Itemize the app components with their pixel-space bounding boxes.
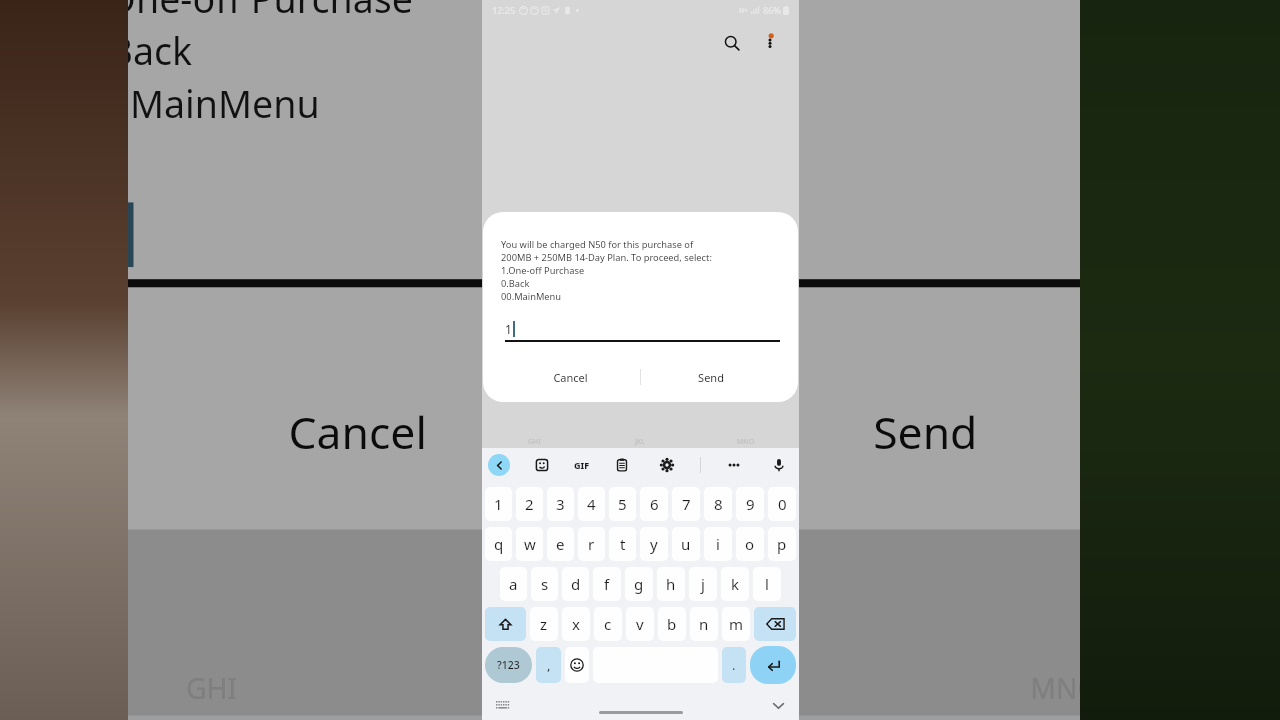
button[interactable]: MNO (853, 671, 1280, 711)
button[interactable]: a (500, 567, 527, 601)
staticText: 5 (618, 494, 627, 514)
button[interactable]: j (689, 567, 717, 601)
staticText: 0.Back (501, 277, 530, 290)
button[interactable]: Shift (485, 607, 526, 641)
button[interactable]: q (485, 527, 512, 561)
button[interactable]: k (721, 567, 749, 601)
button[interactable]: 1 (485, 487, 512, 521)
button[interactable]: i (704, 527, 732, 561)
button[interactable]: c (594, 607, 622, 641)
button[interactable]: 4 (578, 487, 605, 521)
button[interactable]: o (736, 527, 764, 561)
button[interactable]: 6 (640, 487, 668, 521)
button[interactable]: Enter (750, 646, 796, 684)
staticText: y (650, 534, 658, 554)
staticText: c (604, 614, 612, 634)
button[interactable]: h (657, 567, 685, 601)
staticText: You will be charged N50 for this purchas… (501, 238, 694, 251)
staticText: v (636, 614, 644, 634)
button[interactable]: Settings (655, 453, 679, 477)
button[interactable]: Send (641, 358, 780, 396)
staticText: 00.MainMenu (501, 290, 562, 303)
button[interactable]: Search (715, 26, 749, 60)
button[interactable]: More options (753, 26, 787, 60)
button[interactable]: Cancel (501, 358, 640, 396)
button[interactable]: Cancel (77, 352, 638, 505)
button[interactable]: d (562, 567, 589, 601)
button[interactable]: Voice input (767, 453, 791, 477)
button[interactable]: t (609, 527, 636, 561)
button[interactable]: b (658, 607, 686, 641)
staticText: H+ (739, 6, 748, 15)
button[interactable]: u (672, 527, 700, 561)
staticText: a (509, 574, 518, 594)
button[interactable]: MNO (693, 437, 799, 447)
button[interactable]: , (536, 647, 561, 683)
staticText: 4 (587, 494, 596, 514)
staticText: JKL (635, 437, 645, 447)
button[interactable]: l (753, 567, 781, 601)
button[interactable]: More (722, 453, 746, 477)
staticText: m (729, 614, 744, 634)
button[interactable]: y (640, 527, 668, 561)
button[interactable]: ?123 (485, 647, 532, 683)
button[interactable]: n (690, 607, 718, 641)
staticText: g (634, 574, 644, 594)
button[interactable]: Back (488, 454, 510, 476)
button[interactable]: Hide keyboard (767, 694, 789, 716)
staticText: 3 (556, 494, 565, 514)
button[interactable]: 9 (736, 487, 764, 521)
button[interactable]: r (578, 527, 605, 561)
button[interactable]: . (722, 647, 746, 683)
button[interactable]: v (626, 607, 654, 641)
button[interactable]: x (562, 607, 590, 641)
staticText: 0.Back (77, 25, 194, 77)
button[interactable]: p (768, 527, 796, 561)
button[interactable]: m (722, 607, 750, 641)
button[interactable]: e (547, 527, 574, 561)
button[interactable]: w (516, 527, 543, 561)
button[interactable]: s (531, 567, 558, 601)
staticText: k (731, 574, 740, 594)
button[interactable]: 0 (768, 487, 796, 521)
button[interactable]: 3 (547, 487, 574, 521)
staticText: 6 (650, 494, 659, 514)
button[interactable]: 8 (704, 487, 732, 521)
staticText: 200MB + 250MB 14-Day Plan. To proceed, s… (501, 251, 712, 264)
button[interactable]: 5 (609, 487, 636, 521)
staticText: i (716, 534, 720, 554)
button[interactable]: g (625, 567, 653, 601)
button[interactable]: 7 (672, 487, 700, 521)
staticText: u (681, 534, 691, 554)
staticText: q (494, 534, 504, 554)
button[interactable]: Stickers (530, 453, 554, 477)
staticText: x (572, 614, 580, 634)
button[interactable]: Switch keyboard (492, 694, 514, 716)
staticText: z (540, 614, 548, 634)
button[interactable]: GIF (574, 459, 590, 471)
staticText: 1 (494, 494, 503, 514)
button[interactable]: f (593, 567, 621, 601)
button[interactable]: z (530, 607, 558, 641)
button[interactable]: Emoji (565, 647, 589, 683)
staticText: e (556, 534, 565, 554)
staticText: . (732, 656, 736, 674)
staticText: n (699, 614, 709, 634)
staticText: 12:25 (492, 4, 516, 16)
button[interactable]: GHI (0, 671, 424, 711)
staticText: s (541, 574, 549, 594)
button[interactable]: Backspace (754, 607, 796, 641)
staticText: t (620, 534, 626, 554)
button[interactable]: JKL (424, 671, 853, 711)
button[interactable]: Send (642, 352, 1204, 505)
staticText: MNO (737, 437, 755, 447)
staticText: 0 (778, 494, 787, 514)
button[interactable]: 2 (516, 487, 543, 521)
staticText: d (571, 574, 581, 594)
staticText: f (604, 574, 610, 594)
button[interactable]: Clipboard (610, 453, 634, 477)
